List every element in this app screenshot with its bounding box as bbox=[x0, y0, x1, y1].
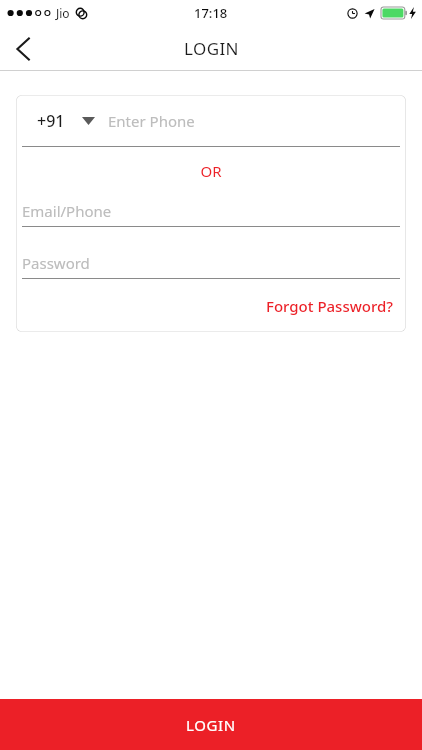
staticText: LOGIN bbox=[184, 37, 239, 60]
staticText: OR bbox=[200, 161, 222, 181]
button[interactable]: Back bbox=[0, 26, 46, 71]
staticText: Email/Phone bbox=[22, 201, 112, 221]
staticText: Enter Phone bbox=[108, 111, 195, 131]
staticText: LOGIN bbox=[186, 715, 236, 735]
button[interactable]: Password bbox=[16, 247, 406, 279]
staticText: 17:18 bbox=[194, 4, 228, 22]
button[interactable]: Forgot Password? bbox=[258, 290, 402, 322]
staticText: Jio bbox=[56, 5, 70, 21]
button[interactable]: Email/Phone bbox=[16, 195, 406, 227]
staticText: Forgot Password? bbox=[266, 296, 394, 316]
staticText: Password bbox=[22, 253, 90, 273]
button[interactable]: LOGIN bbox=[0, 699, 422, 750]
button[interactable]: +91 bbox=[16, 95, 406, 146]
staticText: +91 bbox=[37, 110, 65, 132]
